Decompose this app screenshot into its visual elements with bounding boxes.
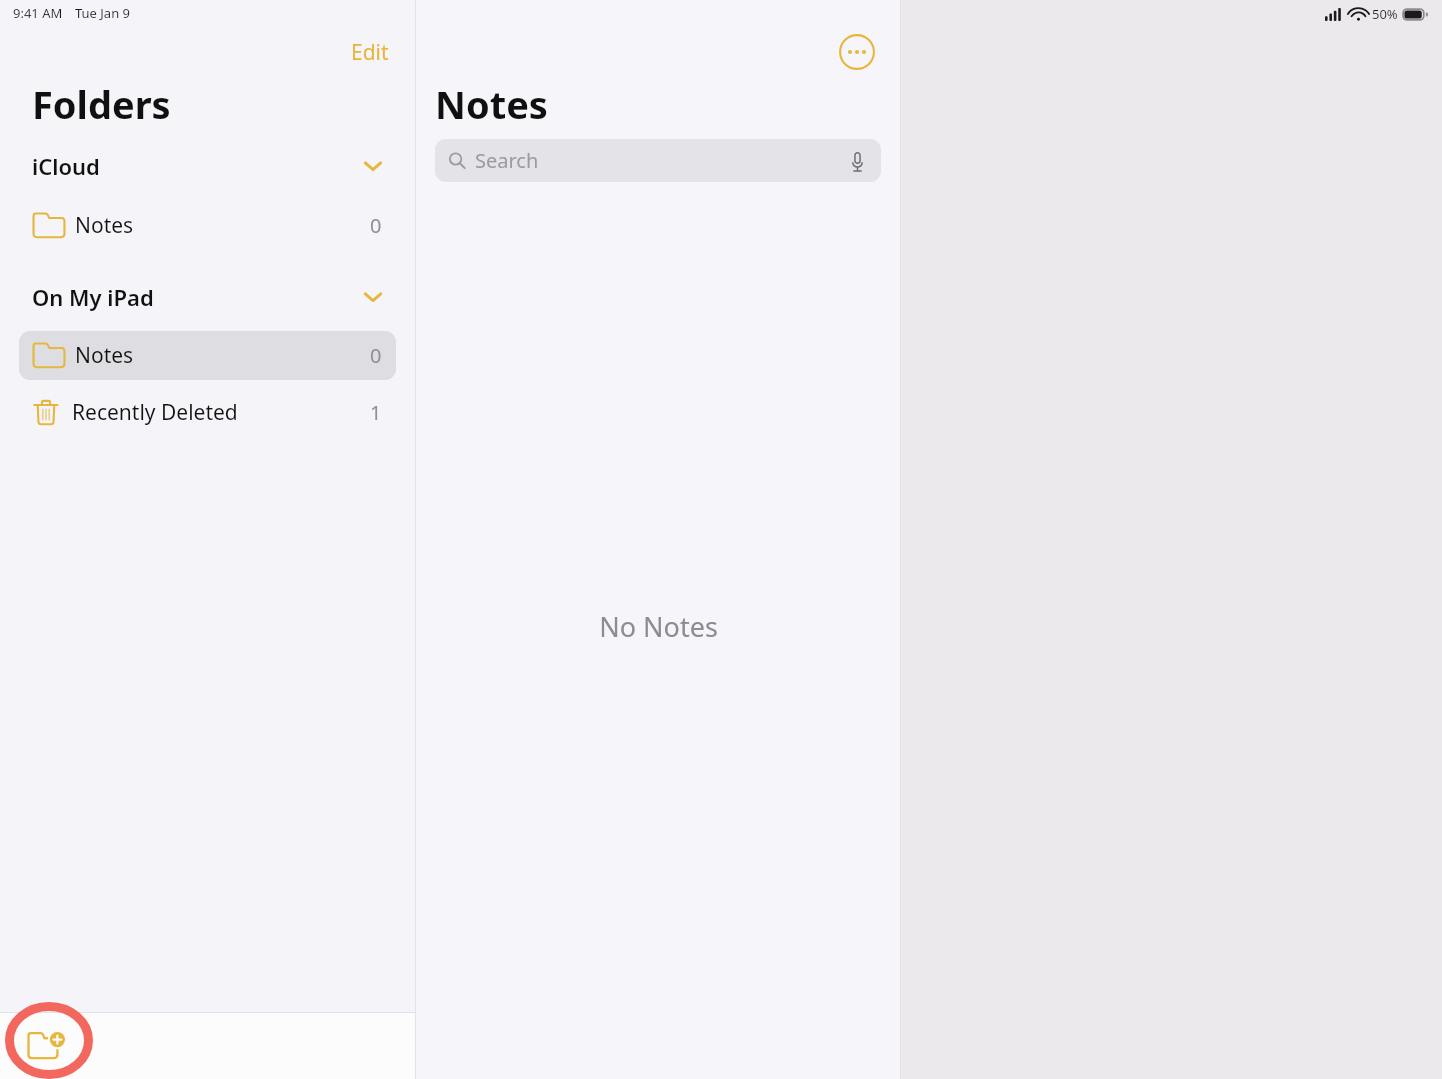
staticText: 50% bbox=[1372, 5, 1398, 23]
staticText: 9:41 AM bbox=[13, 4, 63, 22]
button[interactable]: Notes bbox=[19, 201, 396, 250]
staticText: Notes bbox=[435, 78, 548, 130]
staticText: 0 bbox=[370, 212, 382, 239]
button[interactable]: Dictate bbox=[846, 150, 868, 172]
staticText: Recently Deleted bbox=[72, 398, 238, 427]
button[interactable]: Recently Deleted bbox=[19, 388, 396, 437]
staticText: Notes bbox=[75, 211, 134, 240]
button[interactable]: On My iPad bbox=[0, 275, 415, 319]
staticText: On My iPad bbox=[32, 282, 154, 312]
button[interactable]: Search bbox=[435, 139, 881, 182]
button[interactable]: New Folder bbox=[22, 1022, 70, 1070]
button[interactable]: iCloud bbox=[0, 144, 415, 188]
button[interactable]: Notes bbox=[19, 331, 396, 380]
button[interactable]: More options bbox=[835, 30, 879, 74]
staticText: No Notes bbox=[599, 608, 718, 645]
staticText: iCloud bbox=[32, 151, 100, 181]
staticText: Edit bbox=[351, 38, 389, 67]
staticText: 0 bbox=[370, 342, 382, 369]
staticText: 1 bbox=[370, 399, 382, 426]
button[interactable]: Edit bbox=[345, 34, 395, 71]
staticText: Tue Jan 9 bbox=[75, 4, 131, 22]
staticText: Notes bbox=[75, 341, 134, 370]
staticText: Search bbox=[475, 147, 539, 174]
staticText: Folders bbox=[32, 78, 171, 130]
